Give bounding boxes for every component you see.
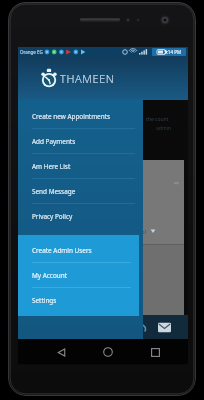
staticText: THAMEEN bbox=[60, 71, 115, 86]
button[interactable]: Add Payments bbox=[18, 129, 143, 153]
staticText: the count bbox=[146, 116, 169, 123]
button[interactable]: Home bbox=[97, 341, 119, 363]
staticText: Orange EG bbox=[20, 49, 43, 55]
button[interactable]: Call bbox=[136, 320, 150, 334]
staticText: Send Message bbox=[32, 187, 76, 196]
staticText: My Account bbox=[32, 271, 68, 280]
button[interactable]: Back bbox=[50, 341, 72, 363]
button[interactable]: Settings bbox=[18, 288, 139, 312]
button[interactable]: Create Admin Users bbox=[18, 238, 139, 262]
button[interactable]: Am Here List bbox=[18, 154, 143, 178]
button[interactable]: Recent apps bbox=[144, 341, 166, 363]
button[interactable]: Create new Appointments bbox=[18, 104, 143, 128]
staticText: Settings bbox=[32, 296, 57, 305]
staticText: Add Payments bbox=[32, 137, 76, 146]
staticText: 3:14 PM bbox=[164, 49, 182, 55]
staticText: Privacy Policy bbox=[32, 212, 73, 221]
staticText: Create new Appointments bbox=[32, 112, 111, 121]
staticText: Create Admin Users bbox=[32, 246, 92, 255]
button[interactable]: My Account bbox=[18, 263, 139, 287]
button[interactable]: Send Message bbox=[18, 179, 143, 203]
button[interactable]: Privacy Policy bbox=[18, 204, 143, 228]
staticText: Am Here List bbox=[32, 162, 71, 171]
staticText: ool bbox=[138, 228, 147, 235]
staticText: admin bbox=[156, 125, 171, 132]
button[interactable]: Send Message bbox=[155, 318, 173, 336]
